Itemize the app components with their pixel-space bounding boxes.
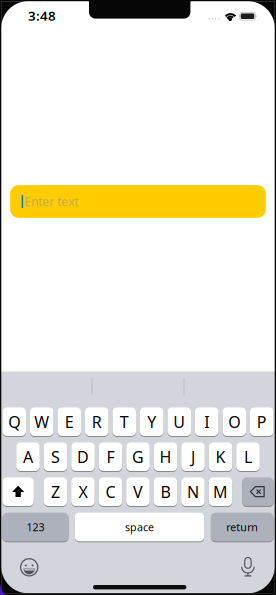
staticText: O <box>228 411 240 432</box>
staticText: K <box>215 446 225 467</box>
button[interactable]: return <box>211 512 273 542</box>
button[interactable]: W <box>30 407 53 436</box>
button[interactable]: H <box>154 442 177 471</box>
button[interactable]: Emoji <box>14 552 44 582</box>
staticText: C <box>105 481 115 502</box>
button[interactable]: N <box>181 477 205 506</box>
staticText: 3:48 <box>28 7 56 24</box>
staticText: N <box>187 481 199 502</box>
button[interactable]: P <box>250 407 273 436</box>
staticText: 123 <box>26 520 44 534</box>
staticText: X <box>78 481 87 502</box>
button[interactable]: 123 <box>2 512 68 542</box>
button[interactable]: space <box>75 512 204 542</box>
staticText: G <box>132 446 144 467</box>
button[interactable]: U <box>167 407 191 436</box>
staticText: return <box>226 520 258 534</box>
button[interactable]: Delete <box>242 477 273 506</box>
button[interactable]: E <box>57 407 81 436</box>
button[interactable]: B <box>154 477 177 506</box>
staticText: D <box>77 446 89 467</box>
button[interactable]: V <box>126 477 150 506</box>
staticText: V <box>133 481 143 502</box>
button[interactable]: C <box>99 477 122 506</box>
staticText: U <box>173 411 185 432</box>
button[interactable]: R <box>85 407 108 436</box>
staticText: A <box>23 446 33 467</box>
staticText: Q <box>8 411 20 432</box>
staticText: W <box>34 411 49 432</box>
button[interactable]: K <box>209 442 232 471</box>
button[interactable]: D <box>71 442 95 471</box>
staticText: L <box>244 446 252 467</box>
button[interactable]: Q <box>2 407 26 436</box>
button[interactable]: X <box>71 477 95 506</box>
staticText: E <box>65 411 74 432</box>
staticText: space <box>125 520 154 534</box>
button[interactable]: I <box>195 407 218 436</box>
staticText: P <box>257 411 267 432</box>
button[interactable]: L <box>236 442 260 471</box>
staticText: H <box>159 446 171 467</box>
staticText: B <box>160 481 170 502</box>
button[interactable]: T <box>112 407 136 436</box>
button[interactable]: Z <box>44 477 67 506</box>
button[interactable]: Dictate <box>233 554 263 580</box>
staticText: Z <box>51 481 60 502</box>
button[interactable]: O <box>222 407 246 436</box>
staticText: Enter text <box>24 193 78 209</box>
staticText: I <box>204 411 209 432</box>
staticText: R <box>92 411 102 432</box>
button[interactable]: Enter text <box>10 185 266 218</box>
button[interactable]: F <box>99 442 122 471</box>
staticText: S <box>51 446 60 467</box>
button[interactable]: G <box>126 442 150 471</box>
button[interactable]: J <box>181 442 205 471</box>
staticText: T <box>120 411 129 432</box>
button[interactable]: Y <box>140 407 163 436</box>
button[interactable]: Shift <box>2 477 34 506</box>
staticText: Y <box>147 411 156 432</box>
button[interactable]: S <box>44 442 67 471</box>
staticText: F <box>106 446 114 467</box>
button[interactable]: M <box>209 477 232 506</box>
staticText: J <box>191 446 195 467</box>
staticText: M <box>213 481 228 502</box>
button[interactable]: A <box>16 442 40 471</box>
